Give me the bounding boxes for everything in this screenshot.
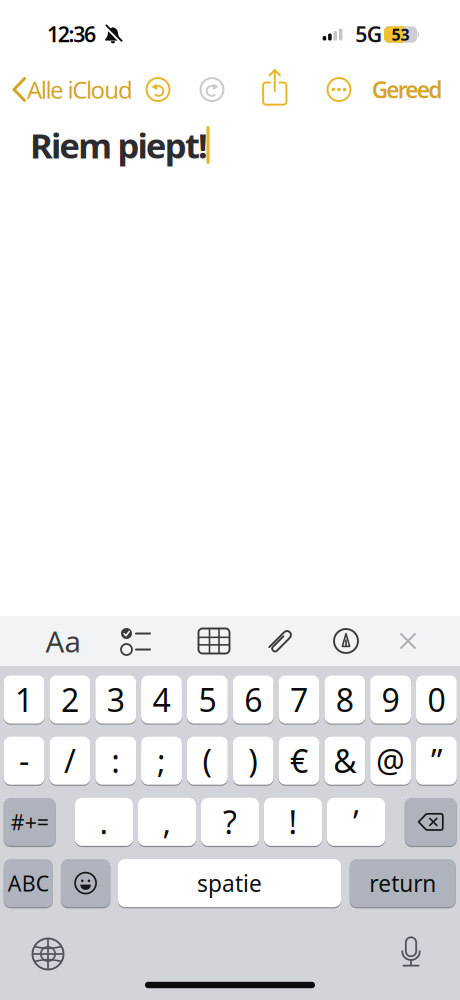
staticText: 0: [427, 678, 445, 721]
button[interactable]: Gereed: [352, 67, 460, 111]
staticText: -: [19, 739, 29, 782]
button[interactable]: Markeringen: [333, 628, 359, 654]
staticText: ,: [162, 801, 171, 843]
button[interactable]: Deel: [261, 68, 288, 105]
staticText: 4: [152, 678, 170, 721]
button[interactable]: Dicteer: [401, 937, 421, 969]
staticText: 9: [382, 678, 400, 721]
button[interactable]: Volgend toetsenbord: [31, 937, 65, 971]
button[interactable]: 5: [187, 674, 228, 724]
button[interactable]: 4: [141, 674, 182, 724]
button[interactable]: ): [233, 736, 274, 786]
staticText: ?: [223, 801, 237, 843]
staticText: Aa: [45, 621, 80, 660]
staticText: Riem piept!: [30, 122, 208, 168]
staticText: #+=: [11, 808, 49, 836]
staticText: €: [290, 739, 308, 782]
staticText: ): [248, 739, 258, 782]
button[interactable]: @: [370, 736, 411, 786]
button[interactable]: ’: [327, 797, 385, 847]
staticText: 5G: [355, 20, 382, 48]
button[interactable]: 8: [324, 674, 365, 724]
button[interactable]: 2: [49, 674, 90, 724]
staticText: 7: [290, 678, 308, 721]
button[interactable]: ?: [201, 797, 259, 847]
button[interactable]: Sluit toetsenbord: [400, 633, 416, 649]
button[interactable]: Bijlage: [266, 626, 296, 656]
button[interactable]: ”: [416, 736, 457, 786]
staticText: ’: [353, 801, 359, 843]
button[interactable]: Checklist: [119, 626, 155, 656]
staticText: 6: [244, 678, 262, 721]
button[interactable]: Herstel: [144, 76, 171, 103]
button[interactable]: ABC: [4, 858, 53, 908]
staticText: 53: [391, 24, 409, 45]
button[interactable]: Meer opties: [325, 76, 352, 103]
staticText: /: [64, 739, 76, 782]
button[interactable]: Opmaak: [38, 619, 88, 663]
button[interactable]: /: [49, 736, 90, 786]
button[interactable]: Emoji: [61, 858, 110, 908]
staticText: 5: [198, 678, 216, 721]
button[interactable]: 6: [233, 674, 274, 724]
staticText: 8: [336, 678, 354, 721]
staticText: Alle iCloud: [27, 74, 133, 105]
staticText: :: [111, 739, 120, 782]
button[interactable]: €: [279, 736, 319, 786]
button[interactable]: (: [187, 736, 228, 786]
button[interactable]: Opnieuw: [198, 76, 225, 103]
staticText: Gereed: [372, 74, 442, 104]
button[interactable]: 7: [279, 674, 319, 724]
staticText: spatie: [197, 868, 262, 898]
staticText: 1: [15, 678, 33, 721]
staticText: 12:36: [47, 20, 96, 48]
staticText: &: [333, 739, 356, 782]
button[interactable]: 0: [416, 674, 457, 724]
button[interactable]: spatie: [118, 858, 341, 908]
staticText: @: [376, 739, 405, 782]
button[interactable]: return: [350, 858, 456, 908]
staticText: (: [202, 739, 212, 782]
staticText: return: [369, 868, 436, 898]
button[interactable]: Tabel: [198, 628, 230, 654]
button[interactable]: ;: [141, 736, 182, 786]
button[interactable]: &: [324, 736, 365, 786]
button[interactable]: :: [95, 736, 136, 786]
staticText: ”: [431, 739, 442, 782]
button[interactable]: 1: [4, 674, 44, 724]
button[interactable]: Verwijder: [405, 797, 457, 847]
staticText: ABC: [8, 869, 49, 897]
staticText: 2: [61, 678, 79, 721]
staticText: .: [99, 801, 108, 843]
button[interactable]: 9: [370, 674, 411, 724]
button[interactable]: Terug naar Alle iCloud: [0, 67, 140, 111]
staticText: ;: [157, 739, 166, 782]
button[interactable]: -: [4, 736, 44, 786]
button[interactable]: ,: [138, 797, 196, 847]
button[interactable]: !: [264, 797, 322, 847]
button[interactable]: 3: [95, 674, 136, 724]
staticText: !: [288, 801, 297, 843]
button[interactable]: #+=: [4, 797, 56, 847]
staticText: 3: [107, 678, 125, 721]
button[interactable]: .: [75, 797, 133, 847]
